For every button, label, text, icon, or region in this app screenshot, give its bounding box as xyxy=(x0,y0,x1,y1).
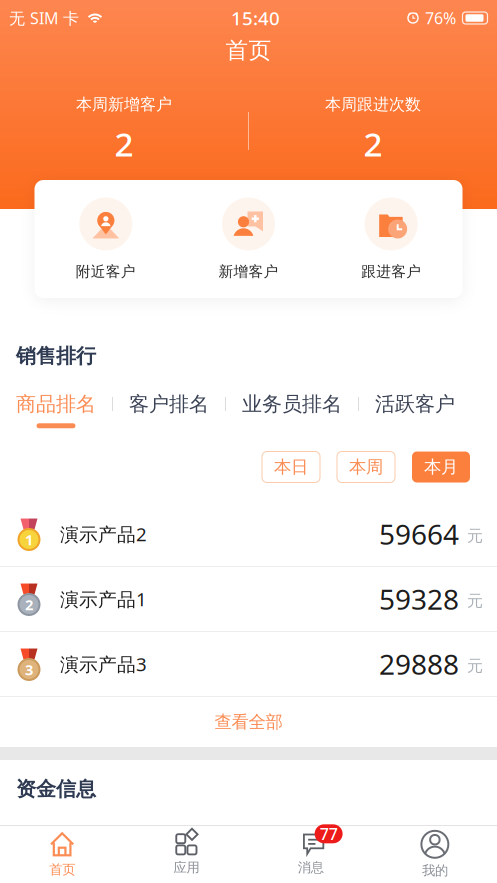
button[interactable]: 跟进客户 xyxy=(320,197,462,280)
staticText: 59328 xyxy=(379,580,459,618)
button[interactable]: 我的 xyxy=(373,830,497,879)
button[interactable]: 首页 xyxy=(0,831,124,878)
staticText: 跟进客户 xyxy=(361,262,421,280)
staticText: 无 SIM 卡 xyxy=(9,7,79,29)
staticText: 附近客户 xyxy=(76,262,136,280)
staticText: 本周新增客户 xyxy=(76,95,172,114)
staticText: 业务员排名 xyxy=(242,392,342,416)
staticText: 本月 xyxy=(424,456,458,478)
staticText: 活跃客户 xyxy=(375,392,455,416)
staticText: 商品排名 xyxy=(16,392,96,416)
staticText: 本周跟进次数 xyxy=(325,95,421,114)
staticText: 客户排名 xyxy=(129,392,209,416)
staticText: 76% xyxy=(425,7,456,29)
staticText: 本周 xyxy=(349,456,383,478)
button[interactable]: 本日 xyxy=(262,451,320,482)
button[interactable]: 客户排名 xyxy=(129,392,209,428)
staticText: 新增客户 xyxy=(218,262,278,280)
staticText: 首页 xyxy=(225,37,271,64)
staticText: 元 xyxy=(467,526,483,546)
staticText: 销售排行 xyxy=(16,344,96,368)
staticText: 29888 xyxy=(379,645,459,683)
staticText: 2 xyxy=(25,595,33,614)
staticText: 演示产品2 xyxy=(60,522,147,546)
button[interactable]: 2 xyxy=(0,567,497,631)
staticText: 本日 xyxy=(274,456,308,478)
staticText: 查看全部 xyxy=(214,711,282,733)
staticText: 消息 xyxy=(298,859,324,876)
button[interactable]: 3 xyxy=(0,632,497,696)
button[interactable]: 1 xyxy=(0,502,497,566)
staticText: 我的 xyxy=(422,862,448,879)
staticText: 77 xyxy=(320,823,338,844)
button[interactable]: 本月 xyxy=(412,451,470,482)
staticText: 59664 xyxy=(379,515,459,553)
staticText: 资金信息 xyxy=(16,777,96,801)
button[interactable]: 活跃客户 xyxy=(375,392,455,428)
staticText: 演示产品3 xyxy=(60,652,147,676)
button[interactable]: 商品排名 xyxy=(16,392,96,428)
button[interactable]: 新增客户 xyxy=(177,197,320,280)
button[interactable]: 业务员排名 xyxy=(242,392,342,428)
button[interactable]: 查看全部 xyxy=(0,697,497,747)
staticText: 3 xyxy=(25,660,33,679)
staticText: 1 xyxy=(25,530,33,549)
staticText: 2 xyxy=(114,121,133,166)
staticText: 首页 xyxy=(49,861,75,878)
button[interactable]: 本周 xyxy=(337,451,395,482)
staticText: 元 xyxy=(467,591,483,611)
staticText: 演示产品1 xyxy=(60,587,147,611)
staticText: 应用 xyxy=(173,859,199,876)
button[interactable]: 77 xyxy=(248,833,373,876)
button[interactable]: 应用 xyxy=(124,833,248,876)
staticText: 2 xyxy=(363,121,382,166)
staticText: 元 xyxy=(467,656,483,676)
button[interactable]: 附近客户 xyxy=(34,197,177,280)
staticText: 15:40 xyxy=(231,6,280,30)
